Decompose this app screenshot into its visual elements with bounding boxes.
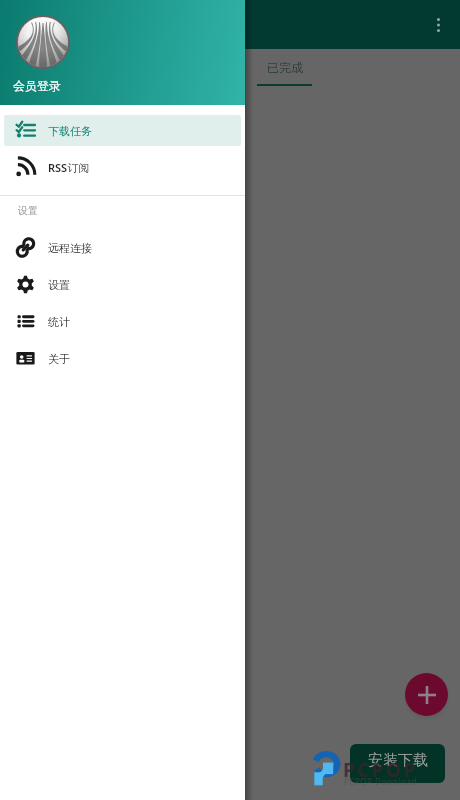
button[interactable]: 关于	[4, 343, 241, 374]
staticText: 正在下载	[107, 60, 155, 75]
button[interactable]: 远程连接	[4, 232, 241, 263]
staticText: PCPOP Download	[344, 776, 417, 787]
staticText: PCPOP	[343, 757, 418, 783]
button[interactable]: RSS订阅	[4, 152, 241, 183]
staticText: 会员登录	[13, 78, 61, 93]
staticText: 远程连接	[48, 241, 92, 255]
staticText: 下载任务	[48, 124, 92, 138]
staticText: 安装下载	[368, 751, 428, 770]
button[interactable]: 下载任务	[4, 115, 241, 146]
staticText: 已完成	[267, 60, 303, 75]
button[interactable]: 已完成	[229, 49, 339, 87]
button[interactable]: 设置	[4, 269, 241, 300]
staticText: 设置	[48, 278, 70, 292]
button[interactable]: More options	[419, 6, 457, 44]
staticText: 统计	[48, 315, 70, 329]
button[interactable]: 安装下载	[350, 744, 445, 783]
button[interactable]: 正在下载	[60, 49, 200, 87]
button[interactable]: 统计	[4, 306, 241, 337]
staticText: RSS订阅	[48, 160, 90, 175]
button[interactable]: Add task	[405, 673, 448, 716]
staticText: 设置	[18, 204, 38, 217]
staticText: 关于	[48, 352, 70, 366]
